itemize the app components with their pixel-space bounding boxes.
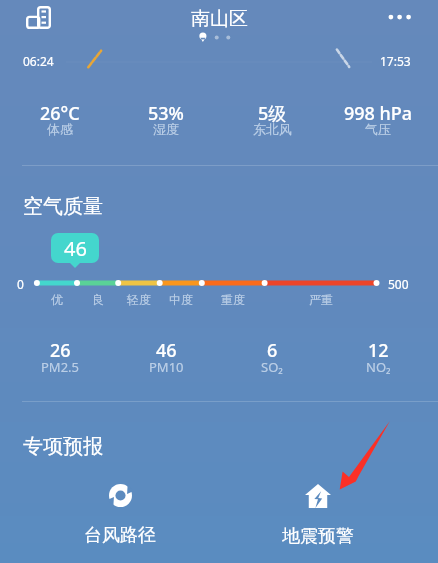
staticText: 0: [17, 276, 24, 292]
button[interactable]: 6: [219, 338, 325, 376]
staticText: 12: [368, 338, 389, 363]
staticText: 气压: [365, 121, 391, 137]
staticText: 轻度: [127, 292, 151, 307]
staticText: PM2.5: [41, 358, 80, 376]
staticText: 500: [388, 276, 409, 292]
staticText: 东北风: [253, 121, 292, 137]
staticText: 南山区: [191, 7, 248, 31]
staticText: 26: [50, 338, 71, 363]
staticText: 6: [267, 338, 278, 363]
staticText: 体感: [47, 121, 73, 137]
staticText: 17:53: [380, 53, 411, 69]
staticText: 5级: [258, 101, 287, 126]
staticText: SO₂: [261, 358, 283, 376]
staticText: 46: [156, 338, 177, 363]
button[interactable]: 998 hPa: [325, 101, 431, 139]
staticText: 地震预警: [282, 525, 354, 548]
staticText: 空气质量: [23, 194, 103, 219]
staticText: 湿度: [153, 121, 179, 137]
staticText: 998 hPa: [344, 101, 413, 126]
staticText: 良: [92, 292, 104, 307]
staticText: 优: [51, 292, 63, 307]
button[interactable]: 53%: [113, 101, 219, 139]
staticText: PM10: [149, 358, 184, 376]
button[interactable]: 5级: [219, 101, 325, 139]
staticText: 重度: [221, 292, 245, 307]
button[interactable]: 地震预警: [219, 484, 417, 548]
button[interactable]: 26°C: [7, 101, 113, 139]
button[interactable]: City list: [16, 0, 60, 44]
staticText: 26°C: [40, 101, 80, 126]
staticText: NO₂: [366, 358, 391, 376]
button[interactable]: More options: [377, 0, 422, 36]
button[interactable]: 台风路径: [21, 484, 219, 547]
button[interactable]: 12: [325, 338, 431, 376]
staticText: 53%: [148, 101, 184, 126]
button[interactable]: 46: [113, 338, 219, 376]
staticText: 专项预报: [23, 434, 103, 459]
button[interactable]: 26: [7, 338, 113, 376]
staticText: 严重: [309, 292, 333, 307]
staticText: 台风路径: [84, 524, 156, 547]
staticText: 46: [64, 235, 87, 262]
staticText: 中度: [169, 292, 193, 307]
staticText: 06:24: [23, 53, 54, 69]
